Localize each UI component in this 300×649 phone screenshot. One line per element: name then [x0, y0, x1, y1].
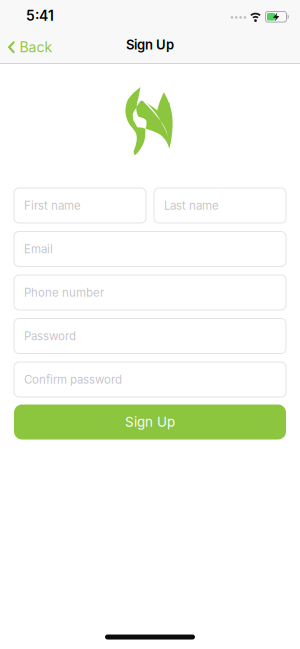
staticText: Email: [24, 242, 53, 256]
textField[interactable]: Phone number: [14, 286, 286, 299]
staticText: Password: [24, 329, 76, 343]
staticText: Last name: [164, 199, 219, 212]
staticText: Phone number: [24, 286, 104, 299]
staticText: Sign Up: [126, 37, 174, 53]
textField[interactable]: Email: [14, 242, 286, 256]
staticText: 5:41: [26, 7, 54, 24]
staticText: Confirm password: [24, 373, 122, 386]
secureTextField[interactable]: Confirm password: [14, 373, 286, 386]
button[interactable]: Sign Up: [14, 404, 286, 439]
button[interactable]: Back: [6, 35, 54, 60]
staticText: First name: [24, 199, 81, 212]
secureTextField[interactable]: Password: [14, 329, 286, 343]
staticText: Back: [19, 39, 52, 56]
textField[interactable]: Last name: [154, 199, 286, 212]
staticText: Sign Up: [125, 414, 175, 430]
textField[interactable]: First name: [14, 199, 146, 212]
